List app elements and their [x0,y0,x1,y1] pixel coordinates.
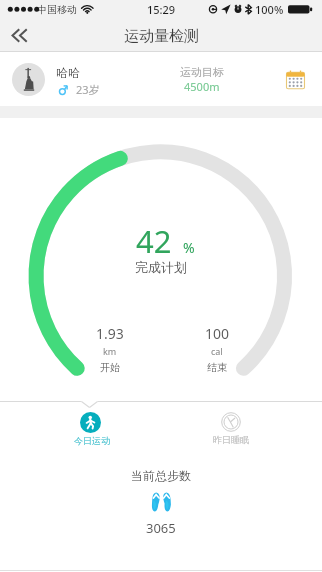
staticText: 结束 [207,361,227,374]
button[interactable]: 今日运动 [60,412,120,446]
staticText: 开始 [100,361,120,374]
staticText: 100% [255,2,284,17]
staticText: % [183,238,195,257]
staticText: cal [211,345,223,357]
staticText: 中国移动 [37,3,77,16]
staticText: 完成计划 [135,259,187,275]
staticText: 当前总步数 [131,468,191,483]
staticText: 3065 [146,519,176,537]
staticText: 运动量检测 [124,27,199,46]
staticText: 23岁 [76,82,100,97]
button[interactable]: 昨日睡眠 [201,412,261,445]
staticText: 昨日睡眠 [213,434,249,445]
staticText: 15:29 [147,2,176,17]
staticText: 运动目标 [180,65,224,79]
button[interactable]: Back [0,18,41,52]
staticText: 1.93 [96,324,124,343]
button[interactable]: Avatar [12,63,45,96]
button[interactable]: Calendar [278,62,312,96]
staticText: km [103,345,117,357]
staticText: 哈哈 [56,65,80,80]
staticText: 4500m [184,79,220,94]
staticText: 42 [136,220,172,262]
staticText: 100 [205,324,230,343]
staticText: 今日运动 [74,435,110,446]
